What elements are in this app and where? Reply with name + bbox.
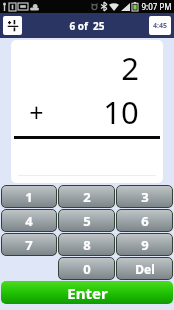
button[interactable]: Enter (1, 281, 173, 304)
staticText: 5 (83, 212, 91, 230)
button[interactable]: 1 (1, 185, 57, 208)
button[interactable]: 4 (1, 209, 57, 232)
staticText: Enter (67, 283, 108, 303)
staticText: 1 (25, 188, 33, 206)
button[interactable]: 8 (58, 233, 115, 256)
staticText: 4 (25, 212, 33, 230)
button[interactable]: 5 (58, 209, 115, 232)
staticText: 10 (103, 91, 139, 133)
button[interactable]: 6 (116, 209, 173, 232)
button[interactable]: Countdown timer (149, 16, 171, 35)
button[interactable]: 9 (116, 233, 173, 256)
button[interactable]: Home (3, 16, 22, 35)
button[interactable]: 3 (116, 185, 173, 208)
staticText: 4:45 (153, 21, 167, 31)
staticText: 8 (83, 236, 91, 254)
button[interactable]: 7 (1, 233, 57, 256)
staticText: 0 (83, 260, 91, 278)
staticText: 9 (141, 236, 149, 254)
staticText: 2 (83, 188, 91, 206)
staticText: 3 (141, 188, 149, 206)
button[interactable]: Del (116, 257, 173, 280)
staticText: 9:07 PM (141, 1, 172, 12)
button[interactable]: 0 (58, 257, 115, 280)
staticText: 2 (121, 47, 139, 89)
staticText: Del (135, 261, 155, 277)
button[interactable]: 2 (58, 185, 115, 208)
staticText: 6 of 25 (69, 19, 105, 33)
staticText: 6 (141, 212, 149, 230)
staticText: + (29, 95, 44, 129)
staticText: 7 (25, 236, 33, 254)
